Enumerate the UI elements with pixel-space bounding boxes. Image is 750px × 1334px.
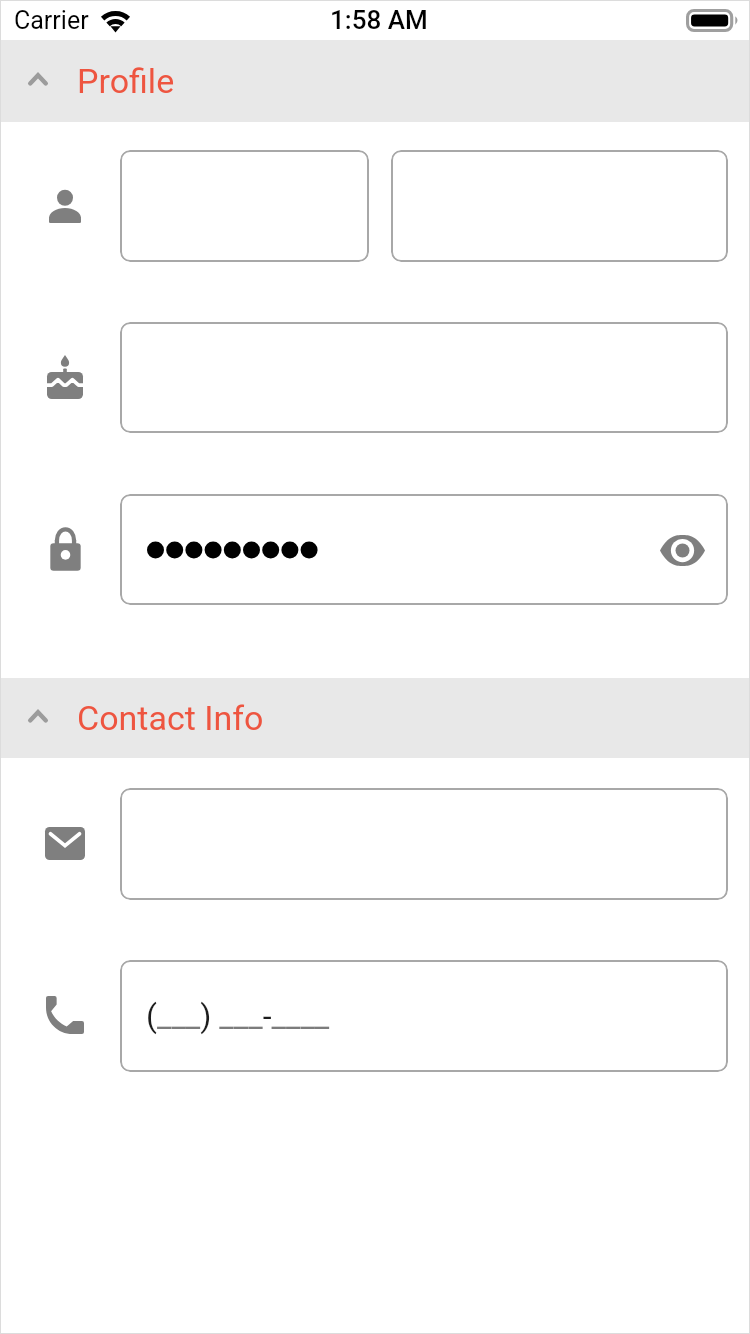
button[interactable] <box>120 788 728 900</box>
button[interactable] <box>120 150 369 262</box>
button[interactable]: (___) ___-____ <box>120 960 728 1072</box>
button[interactable]: Contact Info <box>0 678 750 758</box>
button[interactable]: Profile <box>0 40 750 122</box>
button[interactable]: Show password <box>653 521 711 579</box>
staticText: Carrier <box>14 6 89 35</box>
staticText: 1:58 AM <box>330 5 428 35</box>
button[interactable] <box>391 150 728 262</box>
staticText: Profile <box>77 61 175 101</box>
button[interactable]: Show password <box>120 494 728 605</box>
button[interactable] <box>120 322 728 433</box>
staticText: (___) ___-____ <box>146 997 330 1035</box>
staticText: Contact Info <box>77 698 264 738</box>
